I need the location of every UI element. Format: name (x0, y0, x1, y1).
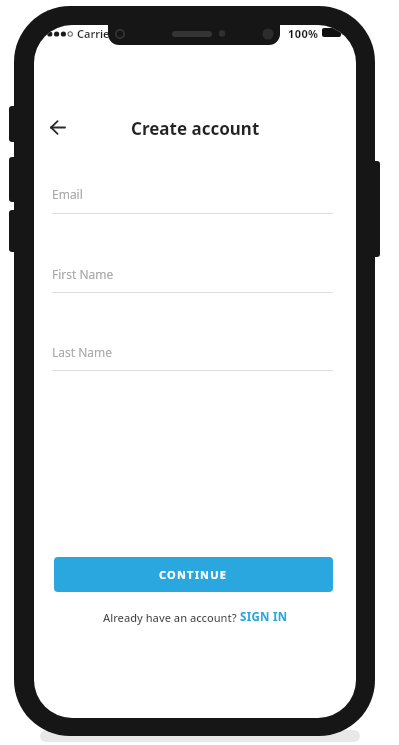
button[interactable]: Email (52, 182, 333, 217)
button[interactable] (46, 116, 70, 139)
button[interactable]: Last Name (52, 340, 333, 374)
staticText: 100% (288, 26, 319, 41)
staticText: First Name (52, 266, 114, 282)
staticText: Carrier (77, 26, 115, 41)
button[interactable]: SIGN IN (240, 609, 288, 625)
staticText: CONTINUE (159, 567, 228, 582)
staticText: Create account (131, 117, 260, 140)
button[interactable]: First Name (52, 262, 333, 296)
staticText: Already have an account? (103, 610, 240, 625)
staticText: Email (52, 186, 83, 202)
staticText: Last Name (52, 344, 113, 360)
button[interactable]: CONTINUE (54, 557, 333, 592)
